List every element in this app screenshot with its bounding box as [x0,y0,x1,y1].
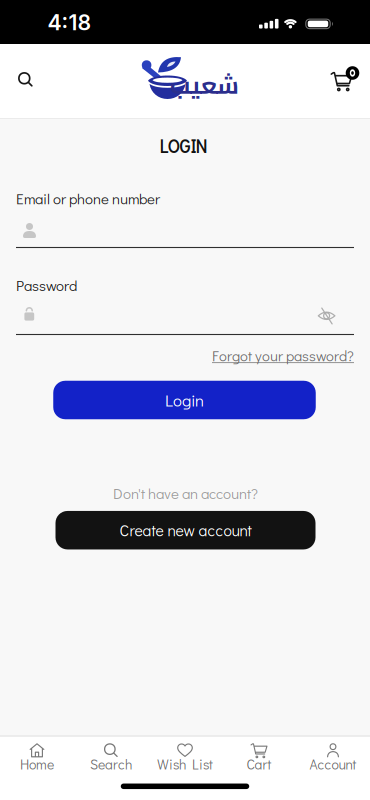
staticText: Wish List [157,755,213,773]
staticText: Account [309,755,356,773]
button[interactable]: Home [0,741,74,783]
button[interactable]: Search [7,61,43,97]
staticText: 4:18 [47,10,91,35]
button[interactable]: Search [74,741,148,783]
staticText: LOGIN [159,135,206,157]
staticText: Email or phone number [16,189,160,208]
staticText: Create new account [119,520,251,540]
button[interactable]: Login [53,381,316,419]
staticText: Search [90,755,132,773]
staticText: Forgot your password? [212,346,354,365]
staticText: شعيب [169,62,238,107]
staticText: Password [16,275,77,295]
button[interactable]: Account [296,741,370,783]
button[interactable]: Wish List [148,741,222,783]
button[interactable]: Cart [321,58,365,102]
button[interactable]: Forgot your password? [212,346,354,365]
button[interactable]: Create new account [55,511,315,549]
staticText: Cart [246,755,271,773]
staticText: Login [165,389,204,411]
staticText: Don't have an account? [113,483,258,503]
button[interactable]: Show password [312,302,342,330]
button[interactable]: Cart [222,741,296,783]
staticText: Home [20,755,54,773]
